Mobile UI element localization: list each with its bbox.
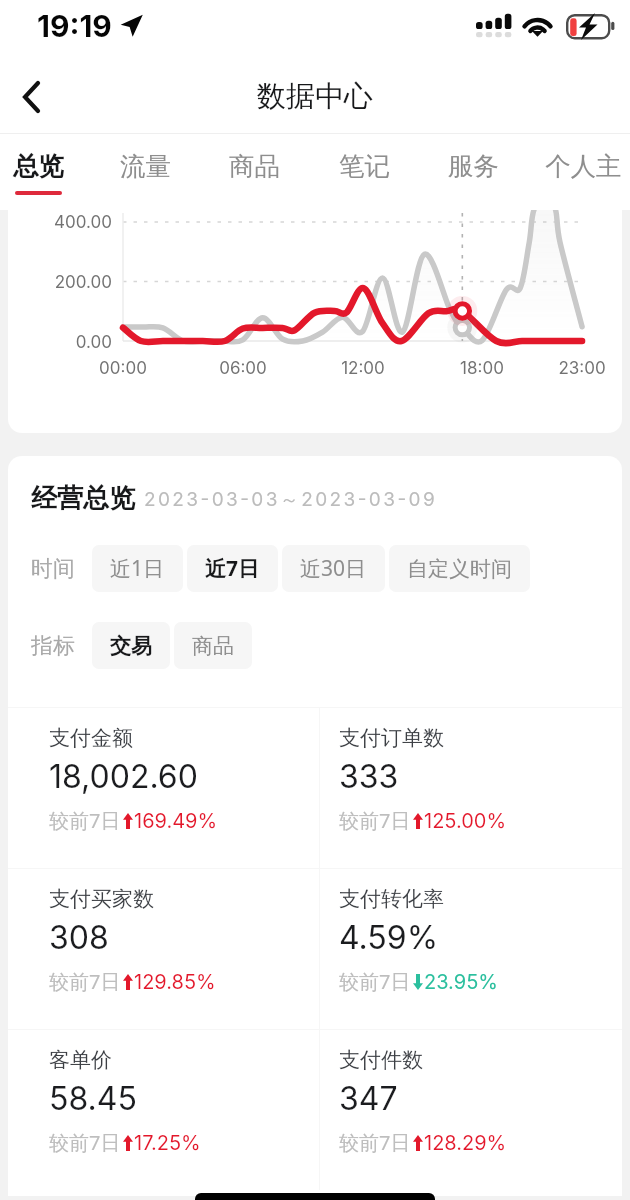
staticText: 较前7日 xyxy=(339,1129,411,1156)
staticText: 17.25% xyxy=(134,1131,201,1155)
button[interactable]: 流量 xyxy=(104,134,186,210)
staticText: 2023-03-03～2023-03-09 xyxy=(144,488,438,512)
staticText: 58.45 xyxy=(49,1079,137,1118)
staticText: 较前7日 xyxy=(49,968,121,995)
staticText: 308 xyxy=(49,918,109,957)
staticText: 18,002.60 xyxy=(49,757,198,796)
staticText: 商品 xyxy=(192,633,234,659)
staticText: 129.85% xyxy=(134,970,216,994)
button[interactable]: Back xyxy=(0,64,62,130)
button[interactable]: 总览 xyxy=(0,134,79,210)
staticText: 0.00 xyxy=(22,332,112,353)
staticText: 200.00 xyxy=(22,272,112,293)
staticText: 128.29% xyxy=(424,1131,507,1155)
button[interactable]: 商品 xyxy=(213,134,295,210)
button[interactable]: 个人主 xyxy=(542,134,624,210)
button[interactable]: 近7日 xyxy=(187,545,278,592)
staticText: 客单价 xyxy=(49,1047,112,1073)
staticText: 近30日 xyxy=(300,554,367,583)
staticText: 较前7日 xyxy=(339,807,411,834)
staticText: 00:00 xyxy=(78,358,168,379)
staticText: 125.00% xyxy=(424,809,507,833)
staticText: 19:19 xyxy=(37,8,112,44)
staticText: 06:00 xyxy=(198,358,288,379)
button[interactable]: 商品 xyxy=(174,622,252,669)
staticText: 支付转化率 xyxy=(339,886,444,912)
staticText: 23.95% xyxy=(424,970,498,994)
button[interactable]: 近1日 xyxy=(92,545,183,592)
staticText: 12:00 xyxy=(318,358,408,379)
button[interactable]: 近30日 xyxy=(282,545,385,592)
staticText: 支付件数 xyxy=(339,1047,423,1073)
staticText: 较前7日 xyxy=(49,807,121,834)
staticText: 交易 xyxy=(110,633,152,659)
staticText: 支付金额 xyxy=(49,725,133,751)
staticText: 347 xyxy=(339,1079,398,1118)
staticText: 时间 xyxy=(31,555,75,583)
staticText: 自定义时间 xyxy=(407,556,512,582)
staticText: 近7日 xyxy=(205,554,260,583)
staticText: 总览 xyxy=(13,150,64,182)
staticText: 169.49% xyxy=(134,809,218,833)
staticText: 23:00 xyxy=(537,358,622,379)
staticText: 较前7日 xyxy=(339,968,411,995)
staticText: 数据中心 xyxy=(257,78,373,115)
staticText: 流量 xyxy=(120,150,171,182)
button[interactable]: 服务 xyxy=(432,134,514,210)
staticText: 支付买家数 xyxy=(49,886,154,912)
staticText: 4.59% xyxy=(339,918,439,957)
staticText: 400.00 xyxy=(22,212,112,233)
staticText: 经营总览 xyxy=(31,482,135,515)
button[interactable]: 自定义时间 xyxy=(389,545,530,592)
staticText: 服务 xyxy=(448,150,499,182)
staticText: 笔记 xyxy=(339,150,390,182)
staticText: 较前7日 xyxy=(49,1129,121,1156)
staticText: 333 xyxy=(339,757,399,796)
staticText: 支付订单数 xyxy=(339,725,444,751)
staticText: 指标 xyxy=(31,632,75,660)
button[interactable]: 交易 xyxy=(92,622,170,669)
staticText: 商品 xyxy=(229,150,280,182)
staticText: 个人主 xyxy=(545,150,622,182)
staticText: 近1日 xyxy=(110,554,165,583)
staticText: 18:00 xyxy=(437,358,527,379)
button[interactable]: 笔记 xyxy=(323,134,405,210)
